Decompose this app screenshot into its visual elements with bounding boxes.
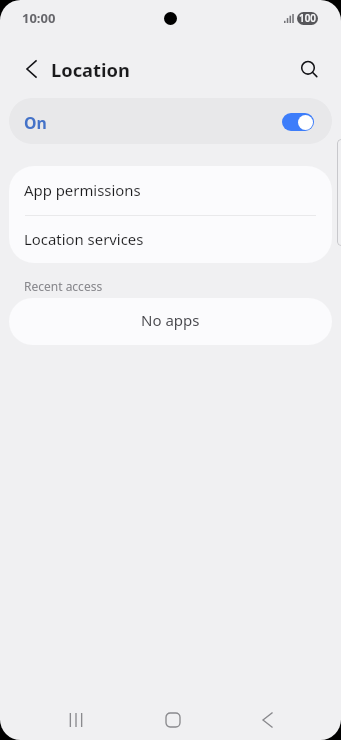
staticText: On [24,112,47,134]
button[interactable]: Back [15,52,48,85]
button[interactable]: Location services [9,216,332,263]
button[interactable]: No apps [9,298,332,345]
staticText: Location services [24,229,144,249]
button[interactable]: Recents [46,698,106,740]
staticText: 100 [299,12,316,24]
button[interactable]: Search [293,53,326,86]
button[interactable]: Home [143,698,203,740]
button[interactable]: Back [237,698,297,740]
staticText: App permissions [24,180,141,200]
button[interactable]: On [9,98,332,144]
staticText: 10:00 [22,9,56,27]
staticText: Recent access [24,278,103,294]
staticText: No apps [141,310,200,330]
button[interactable]: App permissions [9,166,332,215]
staticText: Location [51,57,130,82]
